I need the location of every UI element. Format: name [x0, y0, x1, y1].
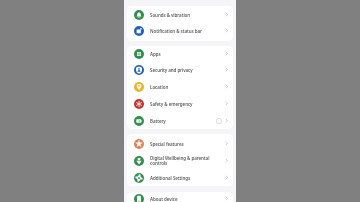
button[interactable]: Sounds & vibration: [127, 6, 233, 23]
button[interactable]: Security and privacy: [127, 61, 233, 78]
button[interactable]: Digital Wellbeing & parental controls: [127, 152, 233, 169]
button[interactable]: Safety & emergency: [127, 95, 233, 112]
staticText: Notification & status bar: [150, 28, 213, 34]
staticText: Sounds & vibration: [150, 12, 213, 18]
button[interactable]: Battery: [127, 112, 233, 129]
staticText: Safety & emergency: [150, 101, 213, 107]
other: Battery saver: [216, 118, 222, 124]
staticText: About device: [150, 196, 213, 202]
staticText: Digital Wellbeing & parental controls: [150, 155, 213, 167]
staticText: Special features: [150, 141, 213, 147]
button[interactable]: About device: [127, 192, 233, 202]
staticText: Apps: [150, 51, 213, 57]
button[interactable]: Location: [127, 78, 233, 95]
staticText: Additional Settings: [150, 175, 213, 181]
staticText: Battery: [150, 118, 205, 124]
staticText: Security and privacy: [150, 67, 213, 73]
button[interactable]: Notification & status bar: [127, 22, 233, 39]
button[interactable]: Additional Settings: [127, 169, 233, 186]
staticText: Location: [150, 84, 213, 90]
button[interactable]: Special features: [127, 135, 233, 152]
button[interactable]: Apps: [127, 46, 233, 62]
